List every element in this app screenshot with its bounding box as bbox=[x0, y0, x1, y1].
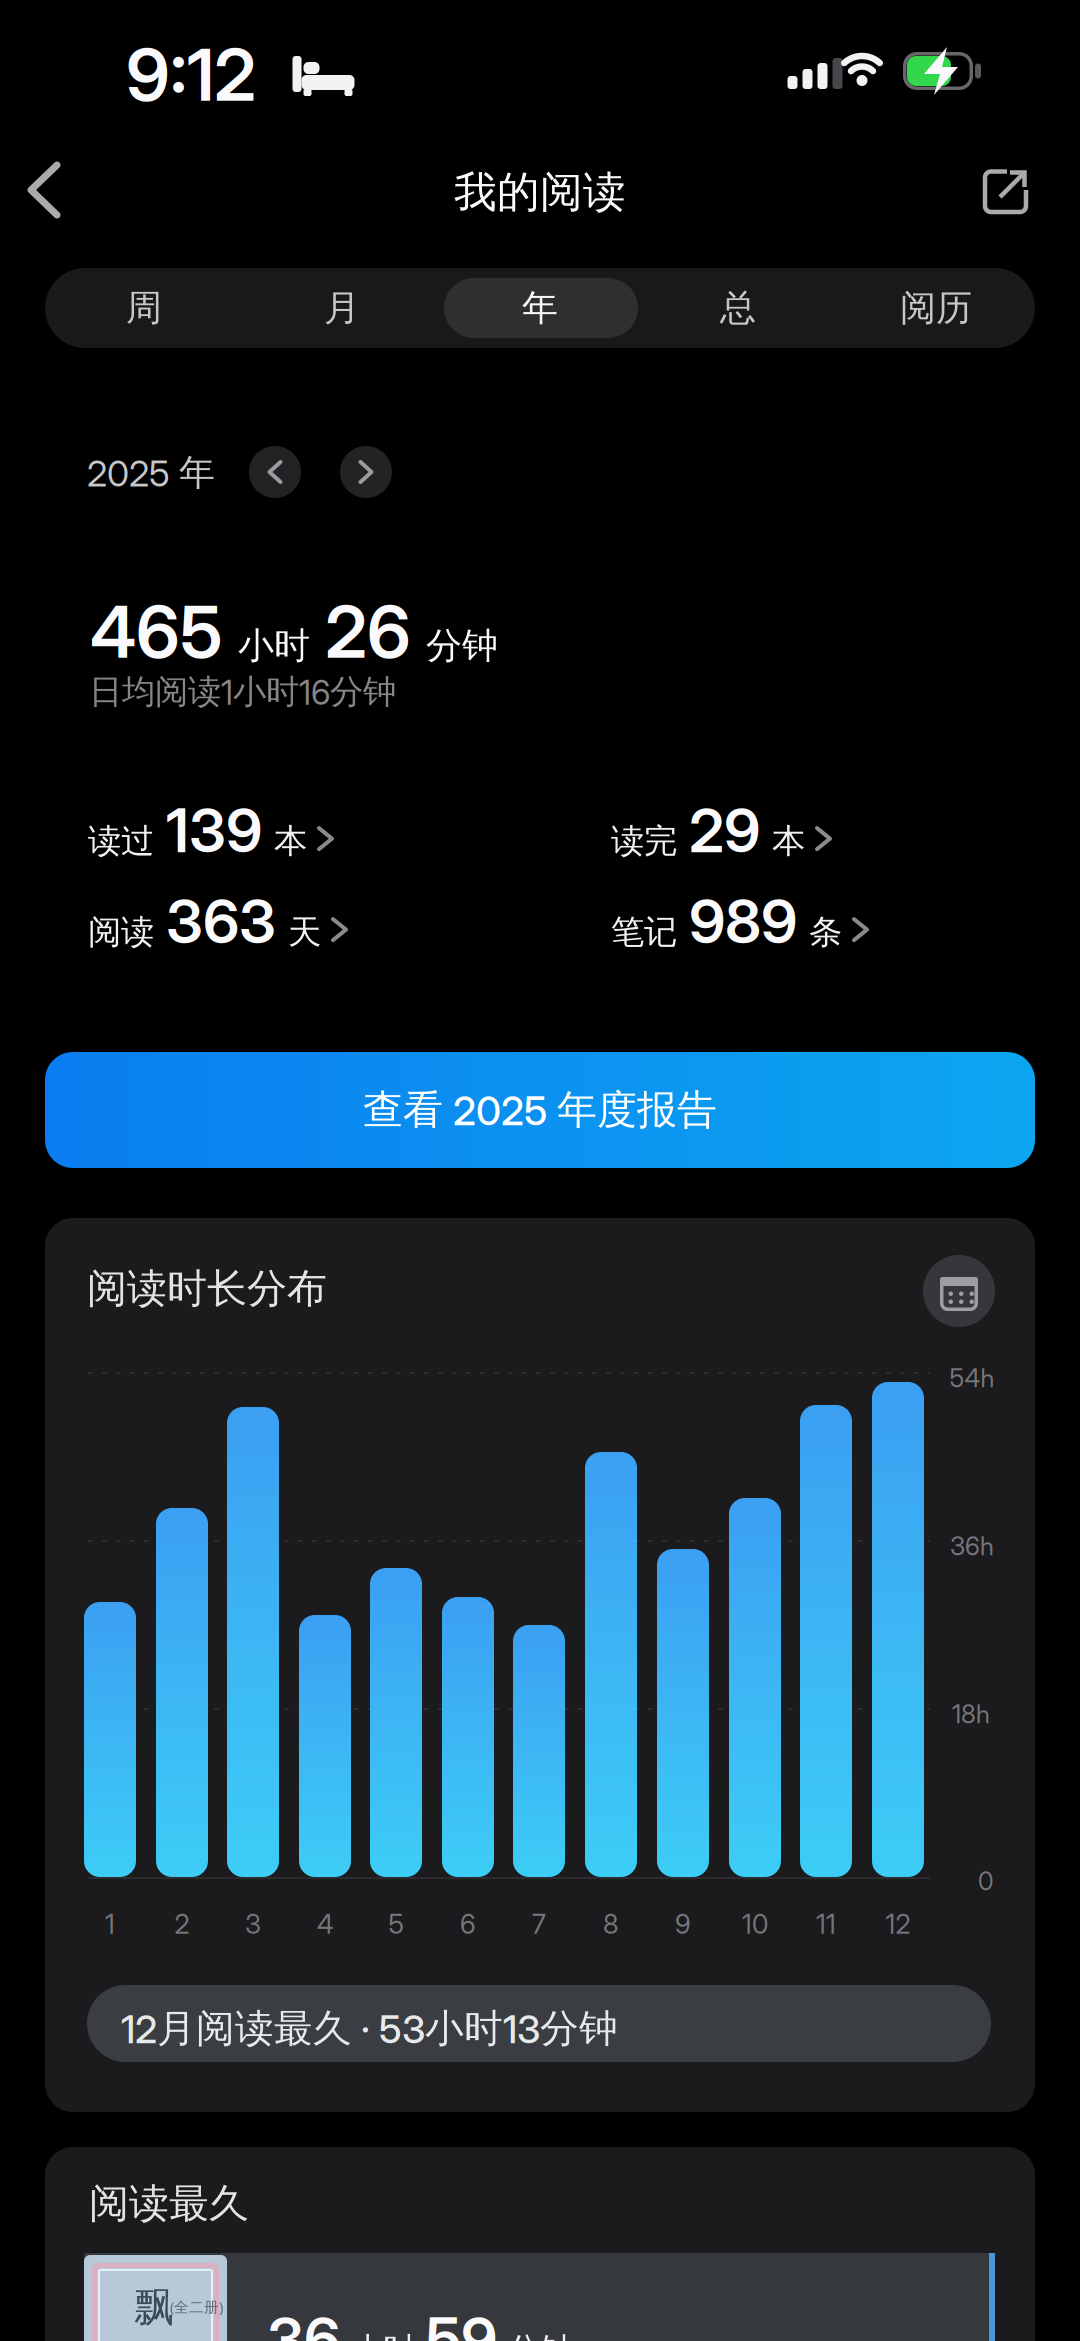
staticText: 12月阅读最久 · 53小时13分钟 bbox=[121, 2004, 618, 2053]
staticText: 2025 年 bbox=[87, 450, 215, 495]
staticText: 5 bbox=[388, 1908, 403, 1940]
staticText: 8 bbox=[603, 1908, 619, 1940]
staticText: 36 bbox=[267, 2303, 340, 2341]
staticText: 4 bbox=[317, 1908, 333, 1940]
staticText: 笔记 bbox=[611, 912, 677, 952]
staticText: 本 bbox=[274, 821, 307, 861]
button[interactable]: 阅读 bbox=[88, 885, 346, 964]
staticText: 1 bbox=[105, 1908, 115, 1940]
staticText: 26 bbox=[325, 588, 411, 675]
button[interactable]: 总 bbox=[639, 268, 837, 348]
staticText: 条 bbox=[809, 912, 842, 952]
staticText: 分钟 bbox=[507, 2330, 573, 2341]
staticText: 我的阅读 bbox=[454, 166, 626, 218]
button[interactable]: 下一年 bbox=[340, 446, 392, 498]
staticText: 54h bbox=[949, 1363, 994, 1393]
staticText: 小时 bbox=[238, 624, 310, 668]
button[interactable]: 飘 bbox=[84, 2253, 995, 2341]
staticText: 9 bbox=[675, 1908, 691, 1940]
staticText: 年 bbox=[522, 286, 558, 330]
staticText: 阅读时长分布 bbox=[87, 1264, 327, 1313]
staticText: 小时 bbox=[350, 2330, 416, 2341]
staticText: 日均阅读1小时16分钟 bbox=[89, 671, 396, 713]
staticText: 月 bbox=[324, 286, 360, 330]
staticText: 阅读 bbox=[88, 912, 154, 952]
staticText: 10 bbox=[742, 1908, 768, 1940]
staticText: 989 bbox=[689, 885, 797, 958]
button[interactable]: 返回 bbox=[9, 150, 79, 230]
staticText: 阅历 bbox=[900, 286, 972, 330]
staticText: 飘 bbox=[134, 2283, 174, 2332]
staticText: 9:12 bbox=[126, 31, 256, 118]
staticText: 读过 bbox=[88, 821, 154, 861]
button[interactable]: 年 bbox=[441, 268, 639, 348]
staticText: 363 bbox=[166, 885, 276, 958]
button[interactable]: 分享 bbox=[966, 152, 1046, 232]
staticText: 天 bbox=[288, 912, 321, 952]
staticText: 查看 2025 年度报告 bbox=[363, 1085, 717, 1135]
staticText: 465 bbox=[90, 588, 223, 675]
staticText: 7 bbox=[532, 1908, 546, 1940]
button[interactable]: 选择日期 bbox=[923, 1255, 995, 1327]
staticText: 阅读最久 bbox=[89, 2179, 249, 2228]
button[interactable]: 阅历 bbox=[837, 268, 1035, 348]
button[interactable]: 周 bbox=[45, 268, 243, 348]
staticText: 11 bbox=[816, 1908, 836, 1940]
staticText: 6 bbox=[460, 1908, 476, 1940]
button[interactable]: 上一年 bbox=[249, 446, 301, 498]
staticText: 139 bbox=[166, 794, 262, 867]
button[interactable]: 查看 2025 年度报告 bbox=[45, 1052, 1035, 1168]
staticText: 总 bbox=[720, 286, 756, 330]
staticText: 读完 bbox=[611, 821, 677, 861]
staticText: 0 bbox=[978, 1866, 994, 1896]
staticText: 3 bbox=[245, 1908, 261, 1940]
staticText: 分钟 bbox=[426, 624, 498, 668]
staticText: 36h bbox=[950, 1531, 994, 1561]
staticText: 12 bbox=[885, 1908, 910, 1940]
staticText: 周 bbox=[126, 286, 162, 330]
staticText: 59 bbox=[426, 2303, 497, 2341]
staticText: 本 bbox=[772, 821, 805, 861]
staticText: 2 bbox=[174, 1908, 189, 1940]
button[interactable]: 读完 bbox=[611, 794, 830, 873]
staticText: 18h bbox=[952, 1699, 990, 1729]
button[interactable]: 月 bbox=[243, 268, 441, 348]
button[interactable]: 笔记 bbox=[611, 885, 867, 964]
staticText: 29 bbox=[689, 794, 760, 867]
staticText: (全二册) bbox=[170, 2297, 223, 2316]
button[interactable]: 读过 bbox=[88, 794, 332, 873]
